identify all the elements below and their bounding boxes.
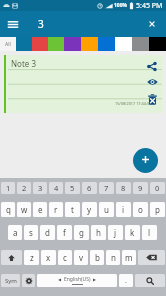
button[interactable]: m bbox=[122, 250, 136, 265]
staticText: ▶ bbox=[93, 277, 97, 282]
staticText: j bbox=[114, 227, 117, 238]
button[interactable]: d bbox=[40, 225, 55, 240]
button[interactable]: Share bbox=[141, 59, 163, 74]
button[interactable]: u bbox=[99, 202, 114, 217]
button[interactable]: y bbox=[82, 202, 97, 217]
staticText: v bbox=[79, 252, 84, 263]
button[interactable]: w bbox=[17, 202, 31, 217]
button[interactable]: Delete bbox=[141, 91, 163, 107]
staticText: 0 bbox=[155, 183, 160, 193]
staticText: f bbox=[63, 227, 66, 238]
button[interactable]: r bbox=[49, 202, 63, 217]
staticText: h bbox=[96, 227, 101, 238]
staticText: x bbox=[46, 252, 51, 263]
button[interactable]: 0 bbox=[150, 182, 165, 194]
button[interactable]: 6 bbox=[82, 182, 97, 194]
staticText: z bbox=[30, 252, 34, 263]
staticText: i bbox=[122, 204, 125, 215]
staticText: 8 bbox=[121, 183, 126, 193]
button[interactable]: Space bbox=[37, 274, 117, 287]
button[interactable]: Menu bbox=[0, 11, 25, 37]
button[interactable]: 3 bbox=[33, 182, 47, 194]
button[interactable]: Search bbox=[135, 274, 165, 287]
staticText: c bbox=[63, 252, 67, 263]
button[interactable]: l bbox=[142, 225, 157, 240]
staticText: a bbox=[13, 227, 18, 238]
staticText: t bbox=[71, 204, 74, 215]
button[interactable]: s bbox=[24, 225, 38, 240]
staticText: d bbox=[45, 227, 50, 238]
staticText: English(US) bbox=[64, 276, 91, 283]
button[interactable]: 4 bbox=[49, 182, 63, 194]
staticText: k bbox=[130, 227, 135, 238]
button[interactable]: 1 bbox=[1, 182, 15, 194]
button[interactable]: a bbox=[8, 225, 22, 240]
button[interactable]: Backspace bbox=[138, 250, 165, 265]
button[interactable]: 2 bbox=[17, 182, 31, 194]
button[interactable]: Close bbox=[141, 11, 163, 37]
button[interactable]: 9 bbox=[133, 182, 148, 194]
button[interactable]: b bbox=[90, 250, 104, 265]
button[interactable]: n bbox=[106, 250, 120, 265]
staticText: 2 bbox=[22, 183, 27, 193]
button[interactable]: j bbox=[108, 225, 123, 240]
button[interactable]: e bbox=[33, 202, 47, 217]
staticText: Sym bbox=[5, 277, 17, 285]
staticText: o bbox=[138, 204, 143, 215]
staticText: 3 bbox=[38, 183, 43, 193]
button[interactable]: . bbox=[119, 274, 133, 287]
staticText: 100% bbox=[114, 2, 128, 9]
staticText: y bbox=[87, 204, 92, 215]
staticText: s bbox=[29, 227, 33, 238]
button[interactable]: Note 3 bbox=[4, 55, 163, 113]
staticText: All bbox=[5, 41, 11, 48]
staticText: 4 bbox=[54, 183, 59, 193]
staticText: ◀ bbox=[58, 277, 62, 282]
button[interactable]: Add note bbox=[133, 148, 158, 173]
button[interactable]: Shift bbox=[1, 250, 22, 265]
button[interactable]: q bbox=[1, 202, 15, 217]
staticText: n bbox=[111, 252, 116, 263]
button[interactable]: View bbox=[141, 74, 163, 89]
staticText: . bbox=[125, 276, 127, 286]
staticText: g bbox=[79, 227, 84, 238]
staticText: u bbox=[104, 204, 109, 215]
button[interactable]: z bbox=[24, 250, 39, 265]
button[interactable]: t bbox=[65, 202, 80, 217]
button[interactable]: 5 bbox=[65, 182, 80, 194]
staticText: r bbox=[54, 204, 58, 215]
button[interactable]: Settings bbox=[22, 274, 35, 287]
staticText: w bbox=[21, 204, 28, 215]
button[interactable]: h bbox=[91, 225, 106, 240]
button[interactable]: v bbox=[74, 250, 88, 265]
button[interactable]: i bbox=[116, 202, 131, 217]
staticText: m bbox=[125, 252, 133, 263]
button[interactable]: p bbox=[150, 202, 165, 217]
button[interactable]: 7 bbox=[99, 182, 114, 194]
button[interactable]: x bbox=[41, 250, 56, 265]
staticText: 6 bbox=[87, 183, 92, 193]
button[interactable]: o bbox=[133, 202, 148, 217]
staticText: q bbox=[6, 204, 11, 215]
button[interactable]: g bbox=[74, 225, 89, 240]
staticText: e bbox=[38, 204, 43, 215]
button[interactable]: k bbox=[125, 225, 140, 240]
button[interactable]: c bbox=[58, 250, 72, 265]
staticText: 9 bbox=[138, 183, 143, 193]
button[interactable]: f bbox=[57, 225, 72, 240]
button[interactable]: 8 bbox=[116, 182, 131, 194]
staticText: Note 3 bbox=[11, 58, 36, 69]
staticText: 1 bbox=[6, 183, 11, 193]
button[interactable]: All bbox=[0, 37, 16, 51]
button[interactable]: Sym bbox=[1, 274, 20, 287]
staticText: 5 bbox=[70, 183, 75, 193]
